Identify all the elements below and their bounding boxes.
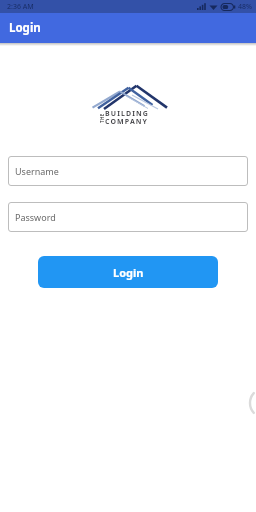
staticText: Username — [15, 165, 59, 177]
staticText: Login — [113, 265, 144, 280]
staticText: BUILDING — [105, 109, 149, 119]
staticText: 48% — [238, 2, 252, 12]
staticText: THE — [99, 113, 105, 123]
button[interactable]: Login — [38, 256, 218, 288]
staticText: 2:36 AM — [7, 2, 34, 12]
staticText: Login — [9, 20, 41, 36]
button[interactable]: Password — [8, 202, 248, 232]
staticText: COMPANY — [105, 117, 149, 127]
staticText: Password — [15, 211, 56, 223]
button[interactable]: Username — [8, 156, 248, 186]
